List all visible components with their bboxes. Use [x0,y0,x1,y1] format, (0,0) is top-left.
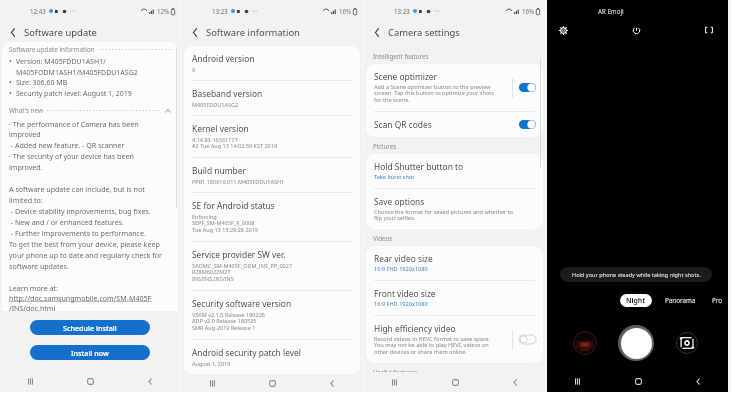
staticText: 4.14.83-16561177 #2 Tue Aug 13 14:02:59 … [192,136,278,150]
staticText: http://doc.samsungmobile.com/SM-M405F /I… [9,293,152,311]
button[interactable]: Switch camera [676,332,698,354]
button[interactable]: SE for Android status [184,193,360,241]
staticText: 9 [192,66,196,73]
staticText: Schedule install [63,323,117,333]
button[interactable]: Rear video size [366,246,543,280]
button[interactable]: Kernel version [184,116,360,157]
button[interactable]: Install now [30,345,150,360]
staticText: Security patch level: August 1, 2019 [16,89,132,99]
button[interactable]: Pro [712,294,723,307]
button[interactable]: Android security patch level [184,340,360,374]
button[interactable]: Scan QR codes [366,112,543,137]
button[interactable]: Security software version [184,291,360,339]
button[interactable]: Home [60,370,120,392]
button[interactable]: Front video size [366,281,543,315]
button[interactable]: Save options [366,189,543,229]
staticText: 16% [522,7,535,15]
button[interactable]: Night [620,294,652,307]
button[interactable]: Home [242,374,302,392]
button[interactable]: Home [608,370,668,392]
staticText: High efficiency video [374,323,456,334]
staticText: Night [626,296,646,305]
button[interactable]: Toggle [519,120,536,129]
button[interactable]: Scene optimizer [366,64,543,111]
staticText: Rear video size [374,253,433,264]
staticText: Version: M405FDDU1ASH1/ M405FODM1ASH1/M4… [16,57,138,77]
staticText: Service provider SW ver. [192,249,286,260]
staticText: Choose the format for saved pictures and… [374,208,514,222]
staticText: • [9,78,16,88]
button[interactable]: Back [120,370,180,392]
staticText: Add a Scene optimizer button to the prev… [374,83,494,104]
button[interactable]: Baseband version [184,81,360,115]
button[interactable]: Android version [184,46,360,80]
staticText: VSKM v2.1.0 Release 190226 ADP v2.0 Rele… [192,311,265,332]
staticText: AR Emoji [598,7,624,15]
staticText: M405FDDU1ASG2 [192,101,239,108]
button[interactable]: Toggle [519,335,536,344]
staticText: PPR1.180610.011.M405FDDU1ASH1 [192,178,285,185]
staticText: Build number [192,165,246,176]
staticText: Videos [373,234,393,242]
staticText: Pro [712,296,723,305]
button[interactable]: Back [369,24,385,40]
button[interactable]: Recents [182,374,242,392]
staticText: Software update [24,26,97,39]
staticText: Android version [192,53,255,64]
button[interactable]: Aspect ratio [702,23,716,37]
staticText: Record videos in HEVC format to save spa… [374,335,491,356]
staticText: • [9,57,16,67]
staticText: • [9,89,16,99]
staticText: Scene optimizer [374,71,438,82]
button[interactable]: Shutter [618,325,654,361]
button[interactable]: Panorama [665,294,696,307]
staticText: 13:23 [394,7,410,15]
staticText: Camera settings [388,26,460,39]
staticText: Install now [71,348,109,358]
staticText: Scan QR codes [374,119,432,130]
button[interactable]: Back [5,24,21,40]
staticText: · The performance of Camera has been imp… [9,119,162,293]
button[interactable]: Recents [0,370,60,392]
button[interactable]: Service provider SW ver. [184,242,360,290]
staticText: Save options [374,196,425,207]
staticText: Kernel version [192,123,249,134]
staticText: 16% [339,7,352,15]
button[interactable]: Toggle [519,83,536,92]
staticText: Hold Shutter button to [374,161,464,172]
button[interactable]: Schedule install [30,320,150,335]
staticText: Hold your phone steady while taking nigh… [572,271,701,279]
button[interactable]: High efficiency video [366,316,543,363]
staticText: SAOMC_SM-M405F_ODM_INS_PP_0027 RZ8M602ZM… [192,262,293,283]
staticText: Take burst shot [374,173,415,181]
button[interactable]: Recents [364,372,425,392]
button[interactable]: Home [425,372,485,392]
staticText: Pictures [373,142,397,150]
button[interactable]: Hold Shutter button to [366,154,543,188]
button[interactable]: Back [187,24,203,40]
staticText: Intelligent features [373,52,429,60]
staticText: 13:23 [212,7,228,15]
button[interactable]: Timer [629,23,643,37]
staticText: August 1, 2019 [192,360,231,367]
button[interactable]: Settings [556,23,570,37]
staticText: Front video size [374,288,436,299]
button[interactable]: Back [668,370,728,392]
button[interactable]: Recents [547,370,608,392]
staticText: Software information [206,26,300,39]
staticText: What's new [9,106,43,115]
staticText: 16:9 FHD 1920x1080 [374,300,428,308]
staticText: Useful features [373,368,418,376]
staticText: Panorama [665,296,696,305]
staticText: SE for Android status [192,200,275,211]
staticText: Size: 366.60 MB [16,78,68,88]
button[interactable]: Gallery [573,331,597,355]
button[interactable]: Back [302,374,362,392]
staticText: Software update information [9,45,95,54]
button[interactable]: Build number [184,158,360,192]
staticText: 16:9 FHD 1920x1080 [374,265,428,273]
staticText: Android security patch level [192,347,301,358]
button[interactable]: Back [485,372,545,392]
staticText: 12% [157,7,170,15]
staticText: 12:43 [30,7,46,15]
